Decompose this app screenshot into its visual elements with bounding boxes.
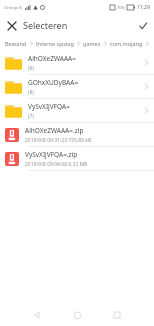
staticText: Bestand [5, 40, 27, 47]
staticText: 70% [117, 5, 125, 10]
button[interactable]: AihOXeZWAAA= [0, 51, 154, 74]
button[interactable]: GOhxXUDyBAA= [0, 75, 154, 98]
staticText: VySvXIjVFQA= [28, 102, 70, 111]
staticText: Orange B [4, 5, 22, 10]
button[interactable]: Confirm [136, 19, 149, 32]
staticText: com.mojang [110, 40, 143, 47]
button[interactable]: Recents [104, 304, 130, 326]
staticText: Selecteren [23, 19, 68, 31]
staticText: games [83, 40, 101, 47]
staticText: 11:29 [137, 4, 150, 11]
button[interactable]: Close [5, 19, 18, 32]
button[interactable]: VySvXIjVFQA=.zip [0, 147, 154, 170]
staticText: VySvXIjVFQA=.zip [25, 150, 78, 159]
button[interactable]: Bestand [5, 40, 27, 47]
button[interactable]: com.mojang [110, 40, 143, 47]
staticText: AihOXeZWAAA=.zip [25, 126, 84, 135]
staticText: 2019/9/8 09:31:23 755,85 kB [25, 137, 92, 144]
button[interactable]: AihOXeZWAAA=.zip [0, 123, 154, 146]
button[interactable]: Interne opslag [36, 40, 74, 47]
staticText: (8) [28, 89, 34, 96]
button[interactable]: VySvXIjVFQA= [0, 99, 154, 122]
button[interactable]: games [83, 40, 101, 47]
staticText: GOhxXUDyBAA= [28, 78, 79, 87]
button[interactable]: Home [64, 304, 90, 326]
button[interactable]: Back [24, 304, 50, 326]
staticText: (6) [28, 65, 34, 72]
staticText: (7) [28, 113, 34, 120]
staticText: 2019/9/8 09:04:08 8,32 MB [25, 161, 88, 168]
staticText: Interne opslag [36, 40, 74, 47]
staticText: AihOXeZWAAA= [28, 54, 76, 63]
